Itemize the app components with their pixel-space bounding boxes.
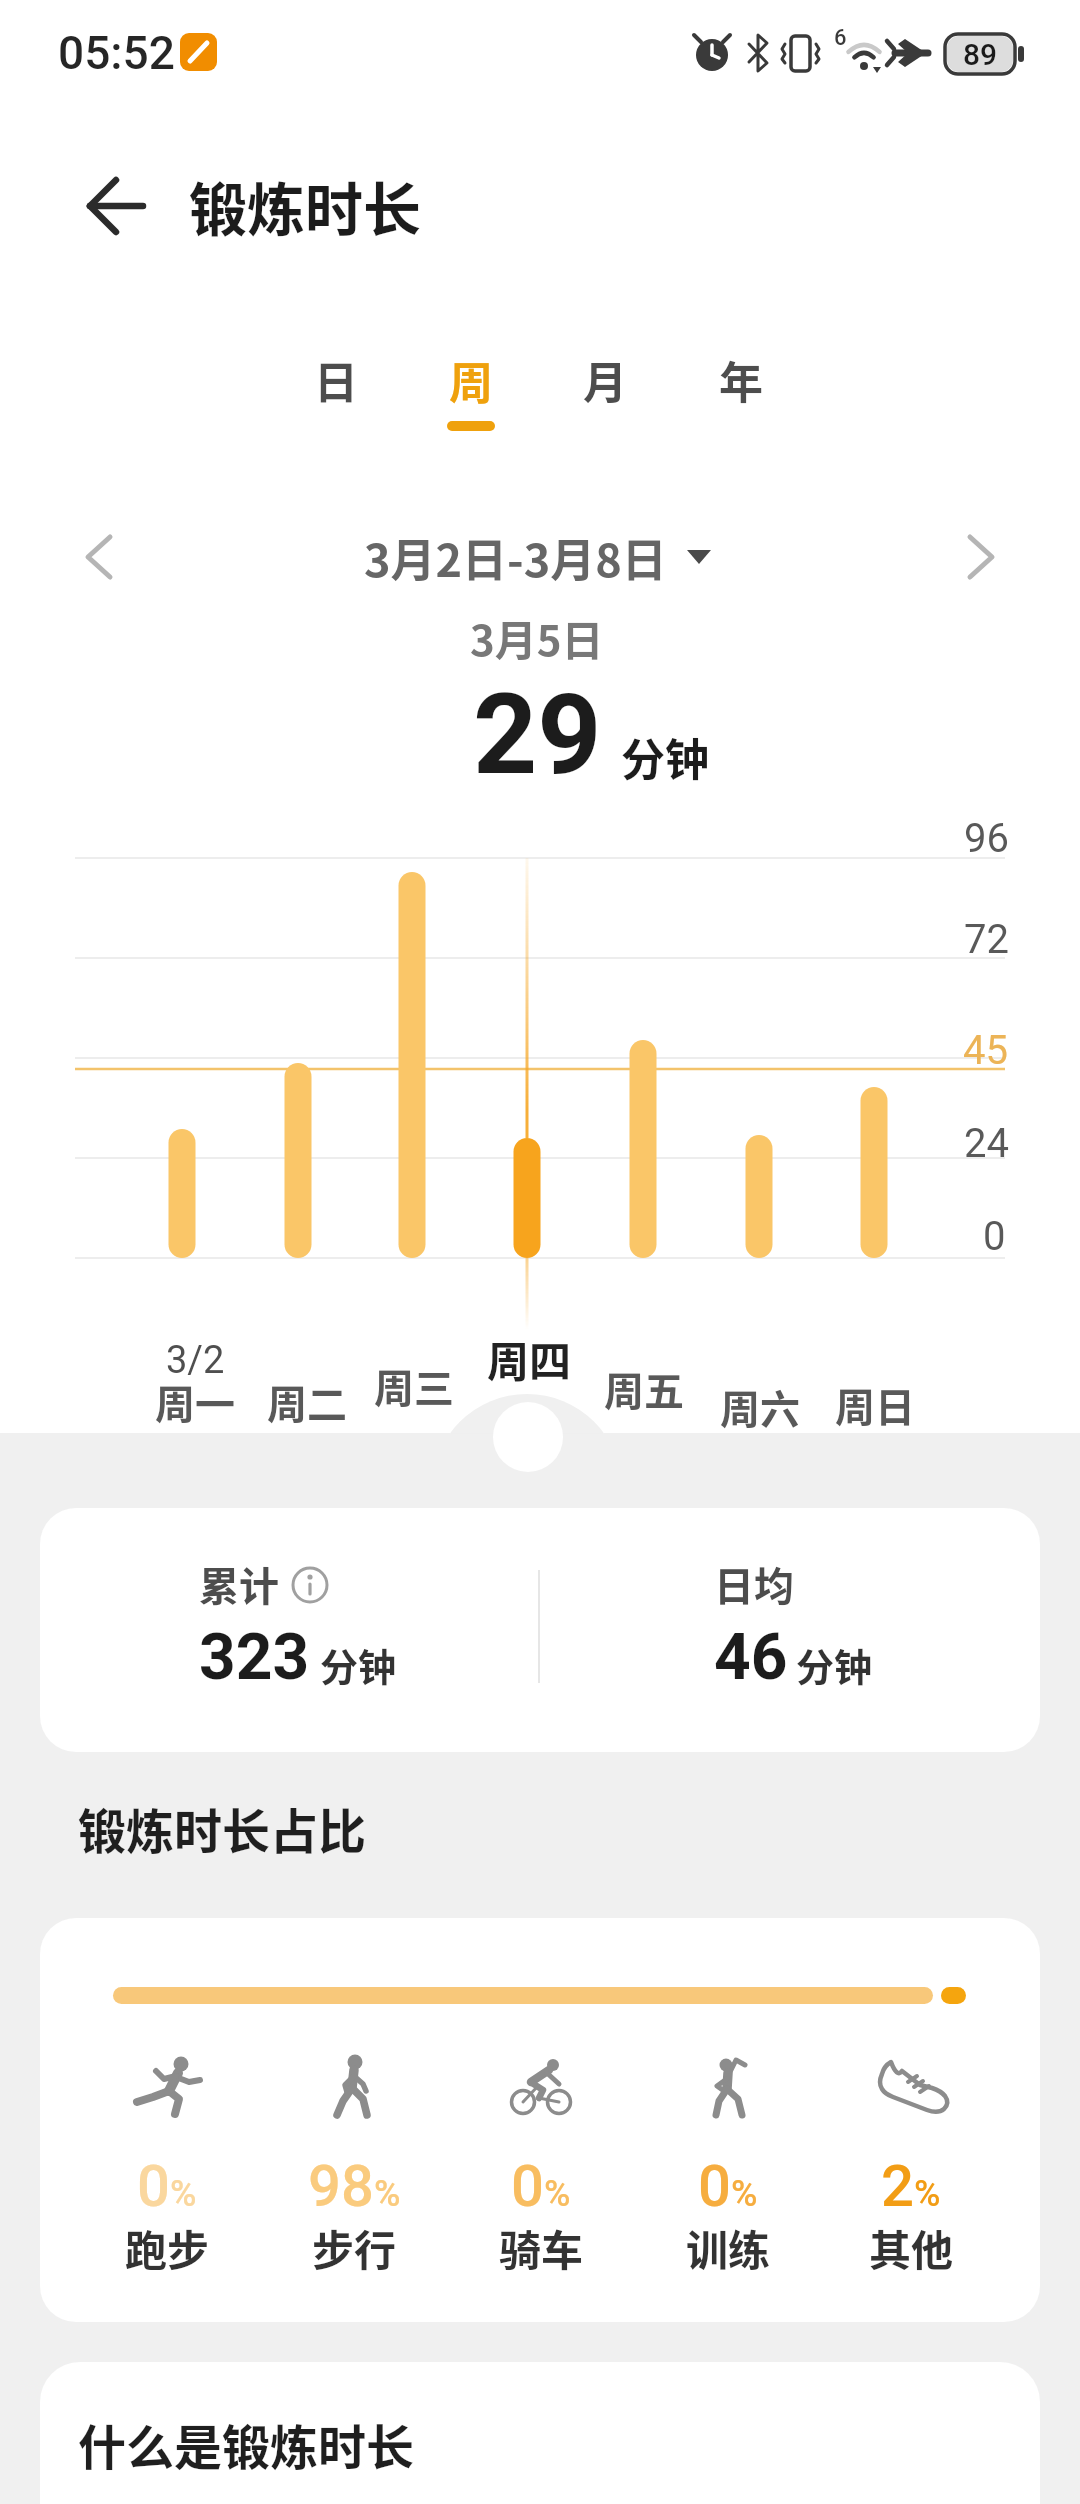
staticText: 46 <box>714 1620 788 1695</box>
button[interactable]: 月 <box>355 310 855 450</box>
staticText: 24 <box>964 1120 1009 1167</box>
button[interactable]: 日 <box>86 310 586 450</box>
staticText: 训练 <box>686 2217 771 2278</box>
staticText: 0 <box>983 1213 1006 1260</box>
staticText: 3月2日-3月8日 <box>364 525 667 590</box>
staticText: 3月5日 <box>470 607 604 668</box>
button[interactable] <box>40 2362 1040 2504</box>
staticText: 0% <box>137 2152 197 2220</box>
staticText: 锻炼时长占比 <box>78 1793 367 1863</box>
button[interactable]: 年 <box>491 310 991 450</box>
button[interactable] <box>48 517 128 597</box>
button[interactable]: 3月2日-3月8日 <box>265 487 765 627</box>
staticText: 周一 <box>155 1373 235 1431</box>
staticText: 骑车 <box>499 2217 584 2278</box>
staticText: 累计 <box>199 1555 279 1613</box>
staticText: 0% <box>698 2152 758 2220</box>
staticText: 323 <box>199 1620 310 1695</box>
staticText: 其他 <box>869 2217 954 2278</box>
staticText: 日 <box>314 348 358 412</box>
staticText: 分钟 <box>320 1637 397 1692</box>
staticText: 0% <box>511 2152 571 2220</box>
staticText: 6 <box>834 25 847 51</box>
button[interactable] <box>952 517 1032 597</box>
staticText: 周 <box>449 348 493 412</box>
staticText: 89 <box>963 37 998 72</box>
staticText: 周日 <box>835 1376 915 1434</box>
staticText: 什么是锻炼时长 <box>78 2409 415 2479</box>
button[interactable]: 周 <box>221 310 721 450</box>
staticText: 月 <box>583 348 627 412</box>
staticText: 3/2 <box>166 1338 225 1383</box>
staticText: 98% <box>308 2152 401 2220</box>
staticText: 05:52 <box>58 26 175 80</box>
staticText: 周三 <box>374 1357 454 1415</box>
staticText: 45 <box>963 1027 1008 1074</box>
staticText: 29 <box>473 669 602 800</box>
staticText: 72 <box>964 916 1009 963</box>
button[interactable] <box>60 170 160 242</box>
staticText: 分钟 <box>621 725 709 789</box>
staticText: 2% <box>881 2152 941 2220</box>
button[interactable] <box>40 1508 1040 1752</box>
staticText: 跑步 <box>125 2217 210 2278</box>
button[interactable] <box>488 1397 568 1477</box>
staticText: 年 <box>719 348 763 412</box>
staticText: 步行 <box>312 2217 397 2278</box>
staticText: 周二 <box>267 1373 347 1431</box>
staticText: 锻炼时长 <box>189 164 422 248</box>
staticText: 周四 <box>487 1328 572 1389</box>
staticText: 96 <box>964 815 1009 862</box>
staticText: 日均 <box>714 1555 794 1613</box>
staticText: 分钟 <box>796 1637 873 1692</box>
button[interactable] <box>40 1918 1040 2322</box>
staticText: 周五 <box>604 1360 684 1418</box>
staticText: 周六 <box>720 1378 800 1436</box>
